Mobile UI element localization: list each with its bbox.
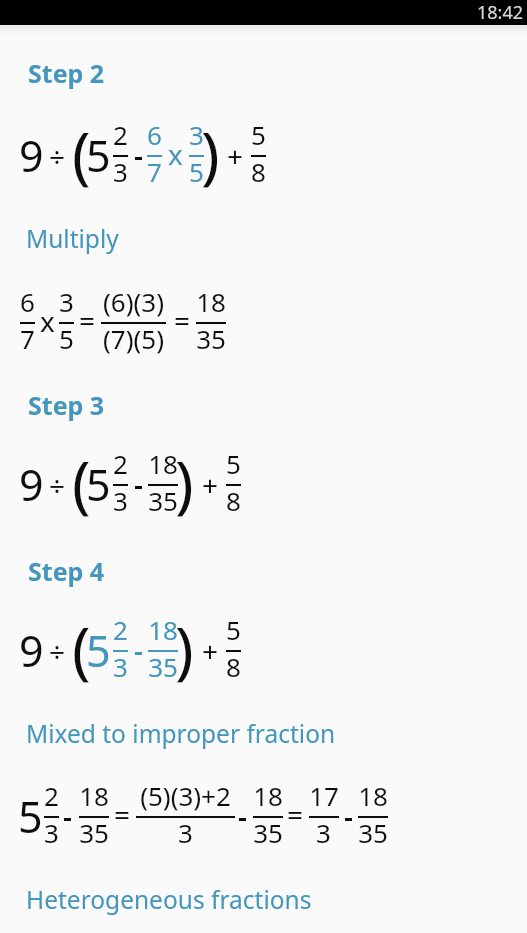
button[interactable]: 9 divided by open parenthesis 5 and 2 th… [20,123,266,185]
staticText: 18 [148,612,178,647]
staticText: 2 [113,117,128,152]
staticText: 3 [113,154,128,189]
staticText: Step 3 [28,388,105,422]
staticText: (7)(5) [103,321,164,356]
staticText: 3 [44,815,59,850]
staticText: 18 [148,446,178,481]
staticText: + [202,632,219,670]
staticText: (6)(3) [103,284,164,319]
staticText: 18 [253,778,283,813]
staticText: 5 [59,321,74,356]
button[interactable]: 9 divided by open parenthesis 5 and 2 th… [20,618,241,680]
staticText: 5 [86,455,111,514]
button[interactable]: Step 4 [0,553,527,597]
staticText: Step 4 [28,554,105,588]
button[interactable]: Step 3 [0,387,527,431]
staticText: 5 [86,126,111,185]
staticText: 18 [79,778,109,813]
staticText: + [227,137,244,175]
staticText: Step 2 [28,56,105,90]
staticText: ) [175,606,194,690]
staticText: 3 [113,649,128,684]
staticText: 35 [196,321,226,356]
staticText: 9 [19,621,44,680]
staticText: = [287,795,304,833]
staticText: 35 [148,483,178,518]
staticText: 17 [309,778,339,813]
staticText: 5 [251,117,266,152]
staticText: ÷ [49,632,66,670]
staticText: 5 [86,621,111,680]
staticText: 18:42 [477,0,524,25]
staticText: (5)(3)+2 [140,778,231,813]
staticText: 5 [226,612,241,647]
staticText: 35 [79,815,109,850]
staticText: 35 [253,815,283,850]
button[interactable]: Step 2 [0,55,527,99]
staticText: 9 [19,126,44,185]
staticText: 6 [147,117,162,152]
button[interactable]: 9 divided by open parenthesis 5 and 2 th… [20,452,241,514]
staticText: 35 [148,649,178,684]
staticText: 2 [113,446,128,481]
staticText: 8 [226,483,241,518]
staticText: 5 [189,154,204,189]
staticText: ( [72,111,91,195]
staticText: 5 [226,446,241,481]
staticText: 6 [20,284,35,319]
staticText: 18 [358,778,388,813]
staticText: ( [72,440,91,524]
staticText: ) [175,440,194,524]
button[interactable]: Multiply [0,219,527,263]
staticText: x [40,302,55,340]
staticText: 9 [19,455,44,514]
staticText: = [114,795,131,833]
staticText: 2 [113,612,128,647]
staticText: 5 [18,787,43,846]
button[interactable]: Heterogeneous fractions [0,880,527,924]
staticText: Mixed to improper fraction [26,717,336,750]
staticText: ÷ [49,466,66,504]
staticText: 35 [358,815,388,850]
staticText: ( [72,606,91,690]
staticText: 8 [226,649,241,684]
staticText: 3 [59,284,74,319]
staticText: 18 [196,284,226,319]
staticText: Heterogeneous fractions [26,883,312,916]
staticText: 3 [178,815,193,850]
staticText: 7 [20,321,35,356]
staticText: 3 [189,117,204,152]
staticText: Multiply [26,222,119,255]
staticText: ÷ [49,137,66,175]
staticText: 8 [251,154,266,189]
staticText: 3 [316,815,331,850]
staticText: 3 [113,483,128,518]
button[interactable]: 6 sevenths times 3 fifths equals 6 times… [20,290,226,352]
staticText: + [202,466,219,504]
staticText: ) [201,111,220,195]
button[interactable]: 5 and 2 thirds minus 18 thirty-fifths eq… [20,784,388,846]
staticText: 2 [44,778,59,813]
button[interactable]: Mixed to improper fraction [0,714,527,758]
staticText: 7 [147,154,162,189]
staticText: = [79,301,96,339]
staticText: x [168,135,183,173]
staticText: = [174,301,191,339]
